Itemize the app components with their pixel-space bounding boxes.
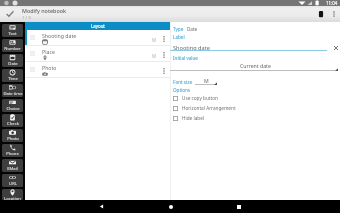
staticText: Shooting date bbox=[42, 32, 77, 39]
button[interactable]: More options bbox=[327, 6, 340, 22]
staticText: Font size bbox=[173, 79, 192, 85]
button[interactable]: Number bbox=[2, 39, 23, 52]
button[interactable]: Hide label bbox=[170, 113, 340, 123]
staticText: M bbox=[204, 77, 209, 84]
button[interactable]: URL bbox=[2, 174, 23, 187]
button[interactable]: Horizontal Arrangement bbox=[170, 103, 340, 113]
button[interactable]: Date bbox=[2, 54, 23, 67]
button[interactable]: Recents bbox=[232, 200, 245, 213]
staticText: Date time bbox=[3, 91, 23, 97]
staticText: Check bbox=[7, 121, 19, 127]
button[interactable]: Time bbox=[2, 69, 23, 82]
staticText: Date bbox=[8, 61, 18, 67]
button[interactable]: Location bbox=[2, 189, 23, 200]
button[interactable]: Photo bbox=[2, 129, 23, 142]
button[interactable]: Current date bbox=[170, 62, 340, 72]
button[interactable]: Field options bbox=[157, 46, 170, 61]
button[interactable]: Check bbox=[2, 114, 23, 127]
staticText: Modify notebook bbox=[22, 7, 66, 14]
staticText: 11:04 bbox=[326, 0, 338, 6]
staticText: Options bbox=[173, 87, 191, 93]
button[interactable]: M bbox=[195, 77, 217, 86]
staticText: Shooting date bbox=[173, 44, 210, 52]
staticText: Photo bbox=[7, 136, 19, 142]
button[interactable]: Back bbox=[95, 200, 108, 213]
staticText: Phone bbox=[6, 151, 19, 157]
button[interactable]: EMail bbox=[2, 159, 23, 172]
staticText: Choice bbox=[6, 106, 20, 112]
button[interactable]: Phone bbox=[2, 144, 23, 157]
staticText: 1 / 3 bbox=[22, 15, 31, 21]
staticText: Current date bbox=[240, 62, 271, 69]
button[interactable]: Date time bbox=[2, 84, 23, 97]
staticText: Layout bbox=[91, 23, 105, 29]
staticText: M bbox=[152, 53, 157, 59]
staticText: Label bbox=[173, 34, 185, 40]
staticText: Location bbox=[4, 196, 21, 200]
button[interactable]: Done bbox=[0, 6, 20, 22]
staticText: URL bbox=[9, 181, 17, 187]
staticText: Photo bbox=[42, 64, 57, 71]
button[interactable]: Use copy button bbox=[170, 93, 340, 103]
staticText: Horizontal Arrangement bbox=[182, 105, 236, 111]
staticText: Text bbox=[8, 31, 17, 37]
staticText: Initial value bbox=[173, 55, 198, 61]
staticText: Place bbox=[42, 48, 55, 55]
button[interactable]: Home bbox=[164, 200, 177, 213]
staticText: EMail bbox=[7, 166, 18, 172]
button[interactable]: Save bbox=[314, 6, 327, 22]
staticText: Use copy button bbox=[182, 95, 218, 101]
staticText: Time bbox=[8, 76, 18, 82]
staticText: Date bbox=[187, 26, 198, 32]
button[interactable]: Field options bbox=[157, 62, 170, 77]
staticText: Number bbox=[4, 46, 21, 52]
button[interactable]: Clear bbox=[331, 43, 340, 52]
button[interactable]: Place bbox=[25, 46, 170, 61]
button[interactable]: Photo bbox=[25, 62, 170, 77]
staticText: Type bbox=[173, 26, 184, 32]
button[interactable]: Field options bbox=[157, 30, 170, 45]
staticText: M bbox=[152, 37, 157, 43]
staticText: Hide label bbox=[182, 115, 205, 121]
button[interactable]: Text bbox=[2, 24, 23, 37]
button[interactable]: Choice bbox=[2, 99, 23, 112]
button[interactable]: Shooting date bbox=[25, 30, 170, 45]
